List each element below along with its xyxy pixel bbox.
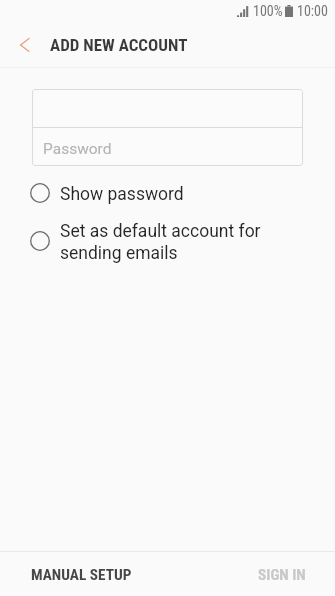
staticText: 100% xyxy=(253,3,283,19)
button[interactable]: Password xyxy=(32,128,303,166)
button[interactable]: Set as default account for sending email… xyxy=(0,214,335,267)
button[interactable]: MANUAL SETUP xyxy=(0,552,258,596)
staticText: ADD NEW ACCOUNT xyxy=(50,35,188,55)
button[interactable] xyxy=(32,89,303,127)
button[interactable]: SIGN IN xyxy=(258,552,335,596)
staticText: 10:00 xyxy=(297,3,328,19)
staticText: Show password xyxy=(60,184,184,205)
button[interactable]: Show password xyxy=(0,177,335,208)
staticText: Password xyxy=(43,140,112,158)
staticText: MANUAL SETUP xyxy=(31,566,132,584)
button[interactable]: Navigate up xyxy=(0,22,46,67)
staticText: Set as default account for sending email… xyxy=(60,221,261,264)
staticText: SIGN IN xyxy=(258,566,306,584)
